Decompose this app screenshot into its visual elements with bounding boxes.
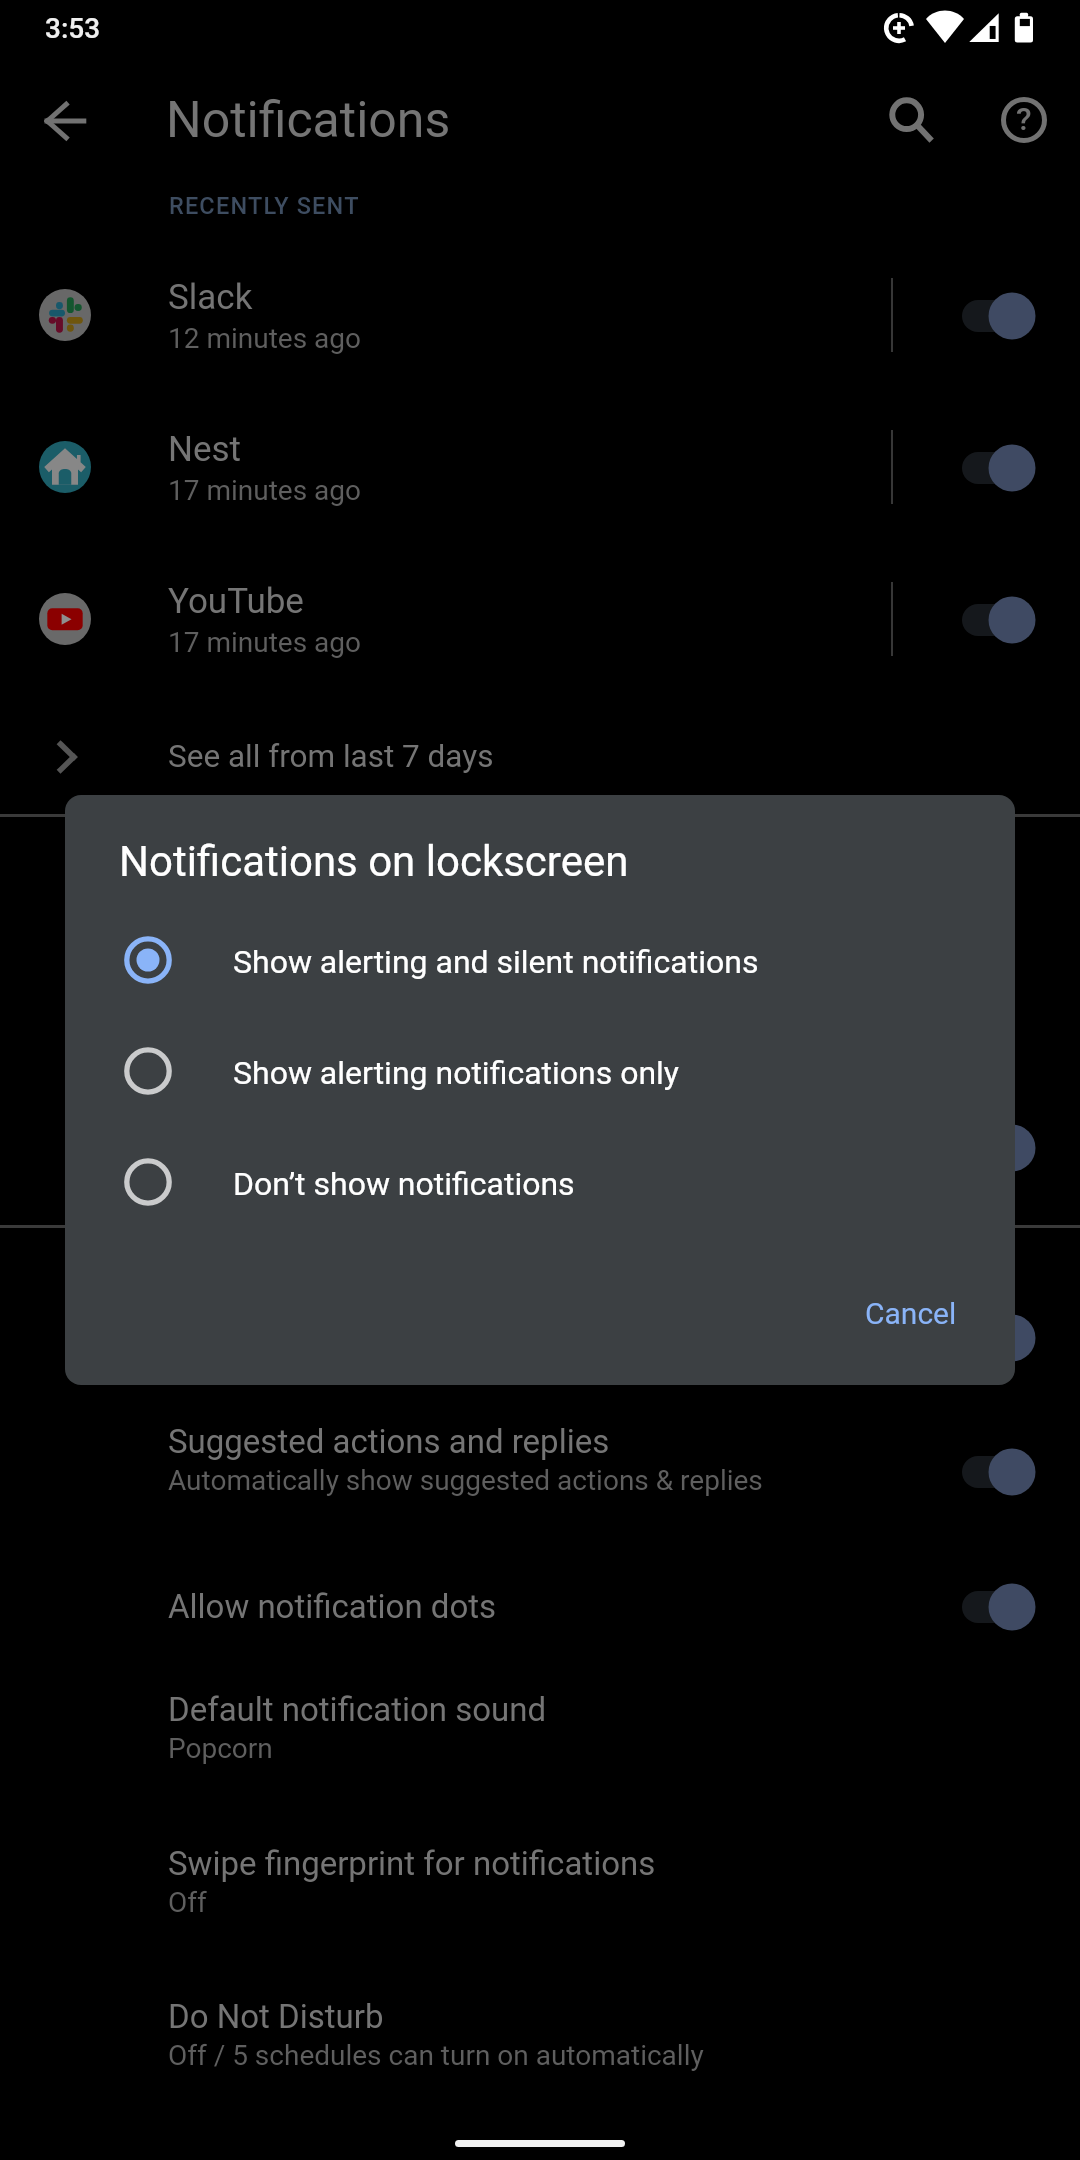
staticText: Swipe fingerprint for notifications — [168, 1844, 656, 1883]
staticText: 3:53 — [45, 12, 101, 45]
staticText: YouTube — [168, 581, 304, 622]
button[interactable]: Help — [985, 81, 1063, 159]
staticText: 17 minutes ago — [168, 474, 362, 507]
staticText: Automatically show suggested actions & r… — [168, 1464, 763, 1497]
staticText: Allow notification dots — [168, 1587, 497, 1626]
staticText: See all from last 7 days — [168, 738, 494, 775]
staticText: Popcorn — [168, 1732, 273, 1765]
button[interactable]: Swipe fingerprint for notifications — [0, 1819, 1080, 1969]
button[interactable]: Back — [26, 82, 104, 160]
button[interactable]: Allow notification dots — [0, 1552, 1080, 1662]
button[interactable]: Cancel — [831, 1273, 991, 1353]
staticText: Nest — [168, 429, 242, 470]
staticText: Off / 5 schedules can turn on automatica… — [168, 2039, 704, 2072]
button[interactable] — [0, 391, 1080, 543]
staticText: Off — [168, 1886, 207, 1919]
button[interactable]: Suggested actions and replies — [0, 1397, 1080, 1547]
staticText: 12 minutes ago — [168, 322, 362, 355]
button[interactable]: Don’t show notifications — [65, 1127, 1015, 1237]
button[interactable]: See all from last 7 days — [0, 707, 1080, 807]
button[interactable]: Toggle — [946, 1112, 1054, 1184]
staticText: Cancel — [865, 1296, 957, 1331]
staticText: RECENTLY SENT — [169, 192, 360, 220]
button[interactable]: Do Not Disturb — [0, 1972, 1080, 2122]
staticText: Default notification sound — [168, 1690, 547, 1729]
button[interactable]: Show alerting notifications only — [65, 1016, 1015, 1126]
staticText: ? — [1016, 100, 1032, 138]
button[interactable] — [0, 543, 1080, 695]
button[interactable]: Show alerting and silent notifications — [65, 905, 1015, 1015]
staticText: Slack — [168, 277, 253, 318]
staticText: Don’t show notifications — [233, 1165, 575, 1203]
button[interactable]: Toggle — [946, 1436, 1054, 1508]
button[interactable]: Toggle — [946, 280, 1054, 352]
button[interactable] — [0, 239, 1080, 391]
button[interactable]: Search — [872, 81, 950, 159]
button[interactable]: Toggle — [946, 1302, 1054, 1374]
staticText: Suggested actions and replies — [168, 1422, 610, 1461]
staticText: Notifications on lockscreen — [119, 837, 629, 886]
button[interactable]: Toggle — [946, 432, 1054, 504]
staticText: Show alerting and silent notifications — [233, 943, 759, 981]
button[interactable]: Toggle — [946, 584, 1054, 656]
button[interactable]: Toggle — [946, 1571, 1054, 1643]
staticText: Notifications — [166, 91, 451, 150]
staticText: Do Not Disturb — [168, 1997, 384, 2036]
staticText: Show alerting notifications only — [233, 1054, 679, 1092]
staticText: 17 minutes ago — [168, 626, 362, 659]
button[interactable]: Default notification sound — [0, 1665, 1080, 1815]
